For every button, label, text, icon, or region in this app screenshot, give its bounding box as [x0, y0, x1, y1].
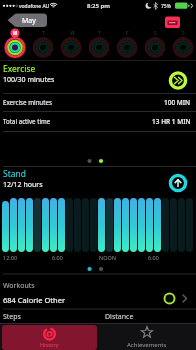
staticText: Stand: [3, 168, 26, 180]
staticText: M: [13, 30, 18, 36]
staticText: May: [22, 16, 36, 26]
staticText: NOON: [99, 254, 116, 261]
staticText: Workouts: [3, 281, 35, 291]
staticText: W: [70, 30, 75, 37]
staticText: Distance: [105, 312, 134, 322]
staticText: S: [182, 30, 185, 37]
staticText: F: [126, 30, 129, 37]
staticText: History: [40, 341, 59, 348]
staticText: 684 Calorie Other: [3, 295, 65, 305]
staticText: 6:00: [52, 254, 63, 261]
staticText: S: [154, 30, 157, 37]
staticText: 75%: [161, 3, 171, 10]
staticText: Total active time: [3, 117, 51, 125]
staticText: 8:25 pm: [87, 2, 110, 10]
staticText: 13 HR 1 MIN: [152, 117, 191, 126]
staticText: T: [42, 30, 45, 37]
staticText: 100/30 minutes: [3, 75, 55, 85]
staticText: Steps: [3, 312, 21, 322]
staticText: vodafone AU: [19, 3, 50, 10]
staticText: Achievements: [127, 341, 167, 349]
staticText: 6:00: [148, 254, 159, 261]
staticText: 12:00: [3, 254, 18, 261]
staticText: 100 MIN: [164, 98, 191, 107]
staticText: Exercise: [3, 63, 36, 75]
staticText: T: [98, 30, 101, 37]
staticText: Exercise minutes: [3, 98, 52, 106]
staticText: 12/12 hours: [3, 180, 43, 190]
